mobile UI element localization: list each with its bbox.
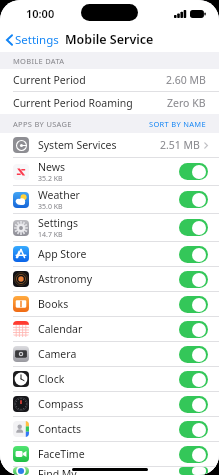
button[interactable]: Current Period — [0, 69, 219, 91]
staticText: App Store — [38, 247, 87, 261]
button[interactable]: Weather mobile data on — [179, 191, 208, 208]
button[interactable]: SORT BY NAME — [136, 116, 219, 132]
button[interactable]: App Store mobile data on — [179, 246, 208, 263]
staticText: Current Period — [13, 73, 86, 87]
button[interactable]: Camera — [0, 342, 219, 366]
staticText: MOBILE DATA — [13, 56, 65, 66]
staticText: Clock — [38, 372, 65, 386]
button[interactable]: Settings mobile data on — [179, 219, 208, 236]
button[interactable]: Settings — [0, 214, 219, 241]
button[interactable]: Contacts mobile data on — [179, 421, 208, 438]
staticText: Contacts — [38, 422, 82, 436]
staticText: 2.51 MB — [160, 138, 200, 152]
button[interactable]: Books — [0, 292, 219, 316]
button[interactable]: App Store — [0, 242, 219, 266]
staticText: Settings — [38, 216, 78, 230]
button[interactable]: Find My — [0, 467, 219, 475]
button[interactable]: Contacts — [0, 417, 219, 441]
button[interactable]: Settings — [0, 28, 65, 52]
staticText: Find My — [38, 467, 77, 475]
staticText: Current Period Roaming — [13, 96, 133, 110]
button[interactable]: FaceTime mobile data on — [179, 446, 208, 463]
staticText: Compass — [38, 397, 84, 411]
button[interactable]: Books mobile data on — [179, 296, 208, 313]
button[interactable]: FaceTime — [0, 442, 219, 466]
staticText: Mobile Service — [65, 31, 154, 48]
staticText: Weather — [38, 188, 80, 202]
staticText: 14.7 KB — [38, 230, 63, 240]
button[interactable]: Clock — [0, 367, 219, 391]
button[interactable]: Astronomy — [0, 267, 219, 291]
button[interactable]: Compass — [0, 392, 219, 416]
button[interactable]: Current Period Roaming — [0, 92, 219, 114]
staticText: Astronomy — [38, 272, 93, 286]
staticText: 35.0 KB — [38, 202, 63, 212]
staticText: Zero KB — [167, 96, 206, 110]
staticText: SORT BY NAME — [149, 119, 206, 129]
button[interactable]: Calendar — [0, 317, 219, 341]
button[interactable]: Astronomy mobile data on — [179, 271, 208, 288]
button[interactable]: Camera mobile data on — [179, 346, 208, 363]
staticText: APPS BY USAGE — [13, 119, 72, 129]
button[interactable]: Weather — [0, 186, 219, 213]
button[interactable]: News — [0, 158, 219, 185]
staticText: Camera — [38, 347, 77, 361]
button[interactable]: Compass mobile data on — [179, 396, 208, 413]
staticText: FaceTime — [38, 447, 85, 461]
staticText: 2.60 MB — [166, 73, 206, 87]
staticText: System Services — [38, 138, 117, 152]
staticText: 35.2 KB — [38, 174, 63, 184]
button[interactable]: Find My mobile data on — [179, 467, 208, 475]
button[interactable]: Clock mobile data on — [179, 371, 208, 388]
button[interactable]: Calendar mobile data on — [179, 321, 208, 338]
staticText: Calendar — [38, 322, 83, 336]
button[interactable]: System Services — [0, 133, 219, 157]
staticText: Books — [38, 297, 69, 311]
staticText: Settings — [15, 32, 59, 48]
button[interactable]: News mobile data on — [179, 163, 208, 180]
staticText: 10:00 — [26, 6, 55, 21]
staticText: News — [38, 160, 65, 174]
